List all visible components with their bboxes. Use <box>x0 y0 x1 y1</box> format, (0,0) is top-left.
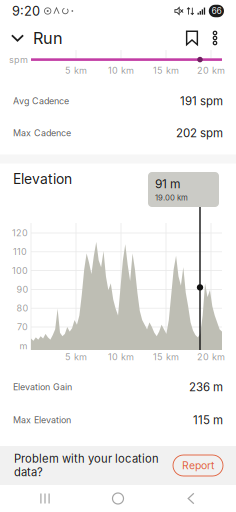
staticText: 15 km <box>153 351 179 362</box>
staticText: Avg Cadence <box>13 96 69 106</box>
button[interactable]: Home <box>90 485 146 512</box>
staticText: 100 <box>12 265 28 276</box>
staticText: 19.00 km <box>155 193 188 202</box>
staticText: Max Elevation <box>13 415 71 425</box>
button[interactable]: Report <box>173 455 223 476</box>
staticText: m <box>19 340 27 351</box>
staticText: Max Cadence <box>13 128 71 138</box>
button[interactable]: More options <box>207 24 223 52</box>
staticText: 80 <box>16 303 28 314</box>
button[interactable]: Collapse <box>6 24 29 52</box>
staticText: 115 m <box>193 413 223 427</box>
staticText: 10 km <box>108 351 134 362</box>
staticText: spm <box>9 54 28 65</box>
staticText: 20 km <box>197 351 225 362</box>
staticText: Report <box>182 459 214 472</box>
staticText: 10 km <box>108 65 134 76</box>
staticText: 91 m <box>155 177 181 191</box>
staticText: 236 m <box>189 380 223 394</box>
button[interactable]: Recents <box>17 485 73 512</box>
staticText: Run <box>33 28 63 48</box>
staticText: 5 km <box>65 351 87 362</box>
staticText: 70 <box>17 321 28 332</box>
staticText: 15 km <box>153 65 179 76</box>
staticText: 66 <box>211 6 221 16</box>
staticText: 20 km <box>197 65 225 76</box>
staticText: 90 <box>16 284 28 295</box>
staticText: 5 km <box>65 65 87 76</box>
button[interactable]: Back <box>163 485 219 512</box>
staticText: 110 <box>13 246 27 257</box>
staticText: Elevation Gain <box>13 382 72 392</box>
staticText: Elevation <box>13 171 72 187</box>
staticText: 191 spm <box>180 94 223 108</box>
staticText: 120 <box>12 227 28 238</box>
staticText: 9:20 <box>12 3 40 19</box>
staticText: Problem with your location data? <box>14 452 159 479</box>
button[interactable]: Bookmark <box>179 24 205 52</box>
staticText: 202 spm <box>176 126 223 140</box>
